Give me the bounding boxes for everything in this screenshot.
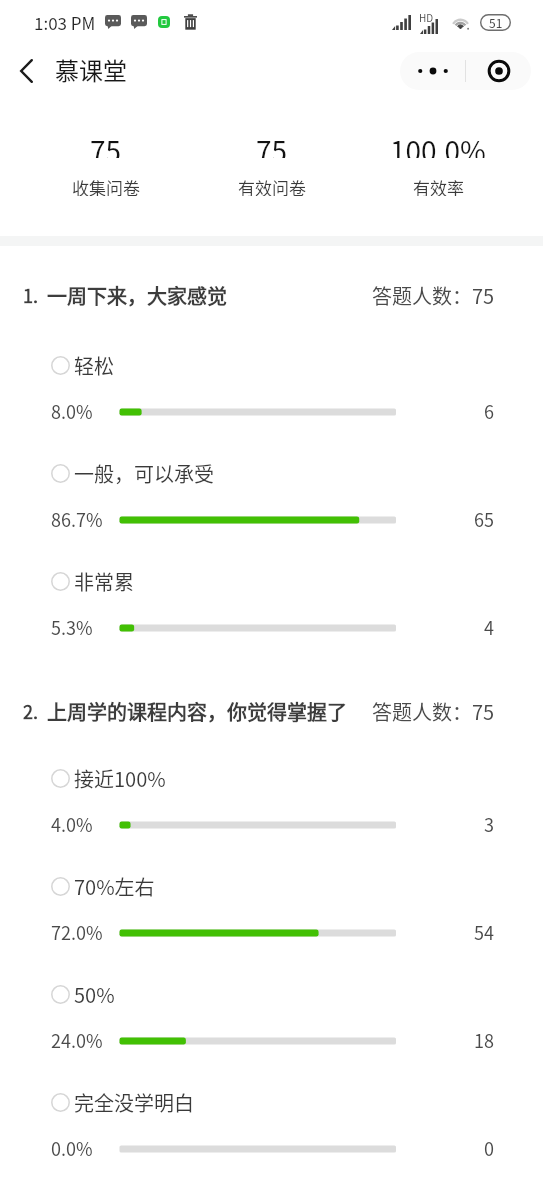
staticText: 54: [474, 919, 494, 945]
staticText: 3: [484, 811, 494, 837]
staticText: 答题人数：75: [372, 281, 495, 310]
staticText: 70%左右: [74, 872, 155, 901]
button[interactable]: 完全没学明白: [0, 1087, 543, 1117]
staticText: 5.3%: [51, 614, 93, 640]
button[interactable]: Close: [466, 52, 531, 90]
staticText: 24.0%: [51, 1027, 103, 1053]
staticText: 答题人数：75: [372, 697, 495, 726]
button[interactable]: 非常累: [0, 566, 543, 596]
staticText: 100.0%: [390, 130, 486, 158]
staticText: 75: [90, 130, 122, 158]
staticText: 一般，可以承受: [74, 459, 214, 488]
button[interactable]: 接近100%: [0, 763, 543, 793]
button[interactable]: 50%: [0, 979, 543, 1009]
staticText: 轻松: [74, 351, 114, 380]
staticText: 一周下来，大家感觉: [47, 281, 227, 310]
staticText: HD: [419, 10, 434, 24]
button[interactable]: Back: [4, 49, 48, 93]
staticText: 上周学的课程内容，你觉得掌握了: [47, 697, 347, 726]
staticText: 0: [484, 1135, 494, 1161]
staticText: 1:03 PM: [34, 10, 96, 35]
button[interactable]: 70%左右: [0, 871, 543, 901]
staticText: 6: [484, 398, 494, 424]
staticText: 50%: [74, 980, 115, 1009]
staticText: 4.0%: [51, 811, 93, 837]
button[interactable]: More options: [400, 52, 465, 90]
staticText: 75: [256, 130, 288, 158]
staticText: 慕课堂: [55, 52, 127, 87]
staticText: 65: [474, 506, 494, 532]
staticText: 非常累: [74, 567, 134, 596]
staticText: 18: [474, 1027, 494, 1053]
staticText: 2.: [23, 698, 38, 724]
staticText: 8.0%: [51, 398, 93, 424]
staticText: 1.: [23, 282, 38, 308]
button[interactable]: 轻松: [0, 350, 543, 380]
staticText: 72.0%: [51, 919, 103, 945]
staticText: 0.0%: [51, 1135, 93, 1161]
staticText: 接近100%: [74, 764, 166, 793]
staticText: 51: [489, 14, 503, 31]
button[interactable]: 一般，可以承受: [0, 458, 543, 488]
staticText: 有效率: [413, 175, 464, 196]
staticText: 86.7%: [51, 506, 103, 532]
staticText: 有效问卷: [238, 175, 306, 196]
staticText: 完全没学明白: [74, 1088, 194, 1117]
staticText: 收集问卷: [72, 175, 140, 196]
staticText: 4: [484, 614, 494, 640]
